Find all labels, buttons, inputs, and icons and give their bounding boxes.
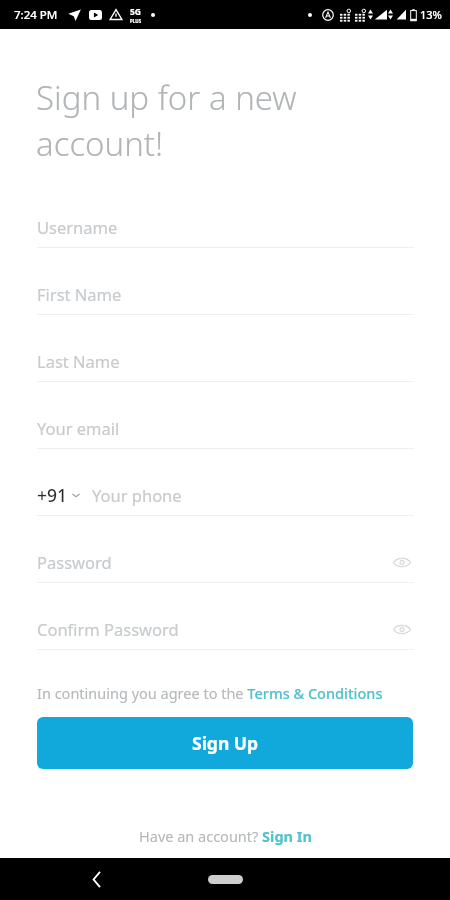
staticText: 5G xyxy=(130,6,142,18)
staticText: Your email xyxy=(37,417,120,439)
button[interactable]: Show password xyxy=(390,550,414,574)
staticText: First Name xyxy=(37,283,122,305)
button[interactable]: Sign Up xyxy=(37,717,413,769)
staticText: Sign Up xyxy=(192,731,259,755)
button[interactable]: First Name xyxy=(0,273,450,340)
button[interactable]: +91 xyxy=(0,474,450,541)
staticText: Username xyxy=(37,216,118,238)
staticText: Confirm Password xyxy=(37,618,179,640)
button[interactable]: Username xyxy=(0,206,450,273)
button[interactable]: Back xyxy=(80,862,114,896)
staticText: Password xyxy=(37,551,112,573)
button[interactable]: Confirm Password xyxy=(0,608,450,675)
button[interactable]: +91 xyxy=(37,483,81,507)
button[interactable]: Your email xyxy=(0,407,450,474)
button[interactable]: In continuing you agree to the Terms & C… xyxy=(0,683,450,703)
staticText: Sign up for a new account! xyxy=(36,75,297,166)
staticText: Your phone xyxy=(92,484,182,506)
staticText: 13% xyxy=(420,7,442,22)
button[interactable]: Have an account? Sign In xyxy=(129,823,322,849)
staticText: Last Name xyxy=(37,350,120,372)
staticText: Have an account? Sign In xyxy=(139,826,312,846)
staticText: In continuing you agree to the Terms & C… xyxy=(37,683,383,703)
staticText: PLUS xyxy=(130,18,142,24)
button[interactable]: Show password xyxy=(390,617,414,641)
staticText: 7:24 PM xyxy=(14,7,58,23)
button[interactable]: Password xyxy=(0,541,450,608)
button[interactable]: Home xyxy=(194,867,256,891)
button[interactable]: Last Name xyxy=(0,340,450,407)
staticText: +91 xyxy=(37,483,68,507)
